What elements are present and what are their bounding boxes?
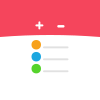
- button[interactable]: Item two: [31, 52, 68, 61]
- button[interactable]: Remove: [53, 18, 69, 34]
- button[interactable]: Item three: [31, 64, 68, 73]
- button[interactable]: Item one: [31, 40, 68, 49]
- button[interactable]: Add: [31, 17, 47, 33]
